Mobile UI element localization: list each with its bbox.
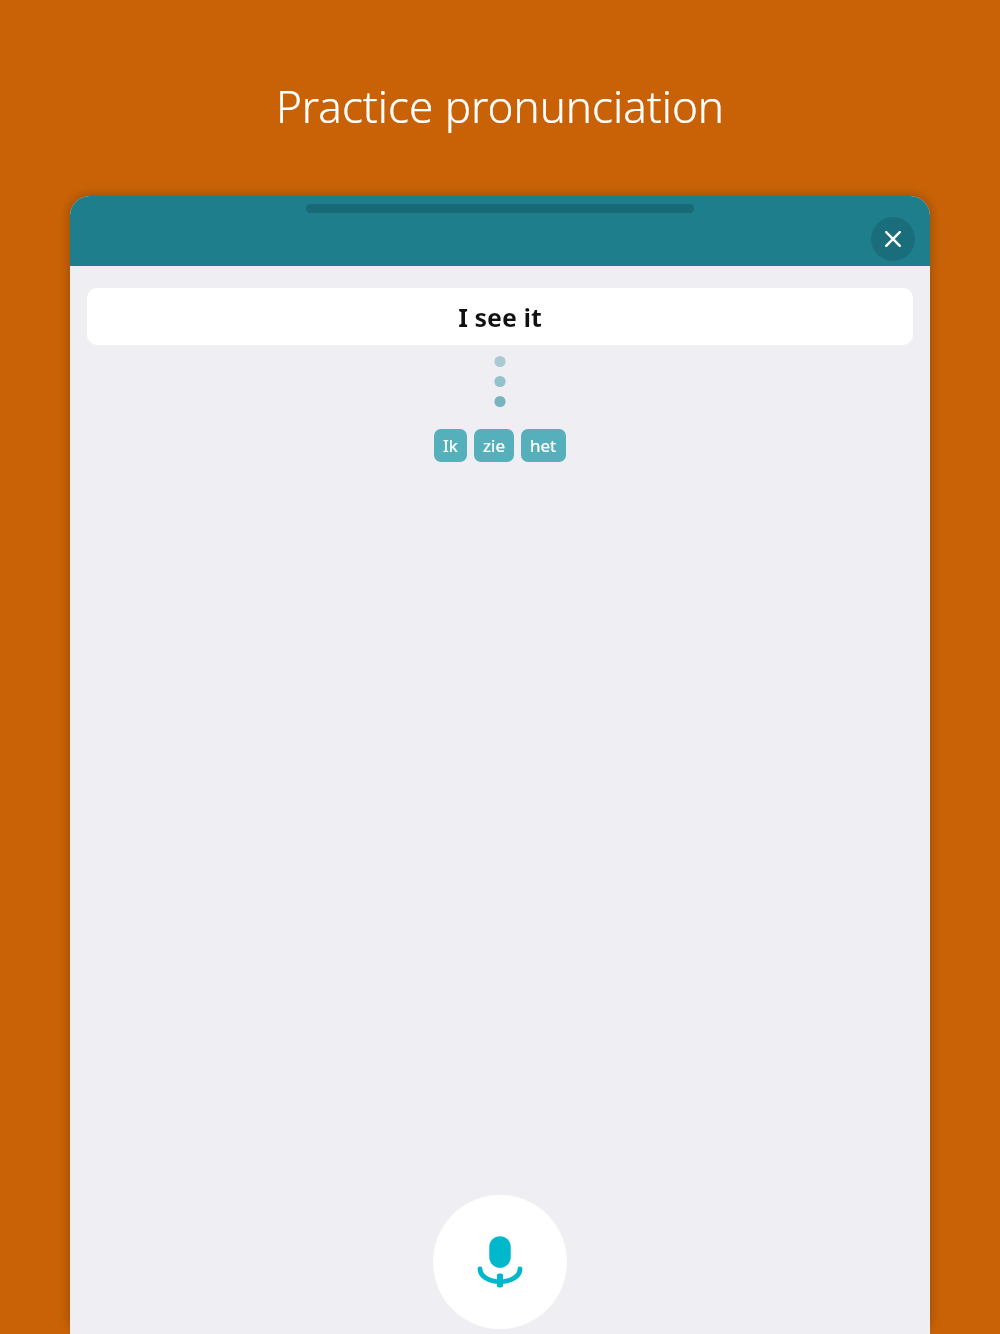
button[interactable]: Ik bbox=[434, 429, 467, 462]
button[interactable]: Record pronunciation bbox=[433, 1195, 567, 1329]
button[interactable]: I see it bbox=[87, 288, 913, 345]
button[interactable]: zie bbox=[474, 429, 514, 462]
staticText: Ik bbox=[443, 434, 458, 457]
staticText: I see it bbox=[458, 300, 542, 334]
staticText: zie bbox=[483, 434, 505, 457]
button[interactable]: Close bbox=[871, 217, 915, 261]
staticText: het bbox=[530, 434, 557, 457]
button[interactable]: het bbox=[521, 429, 566, 462]
staticText: Practice pronunciation bbox=[0, 76, 1000, 136]
